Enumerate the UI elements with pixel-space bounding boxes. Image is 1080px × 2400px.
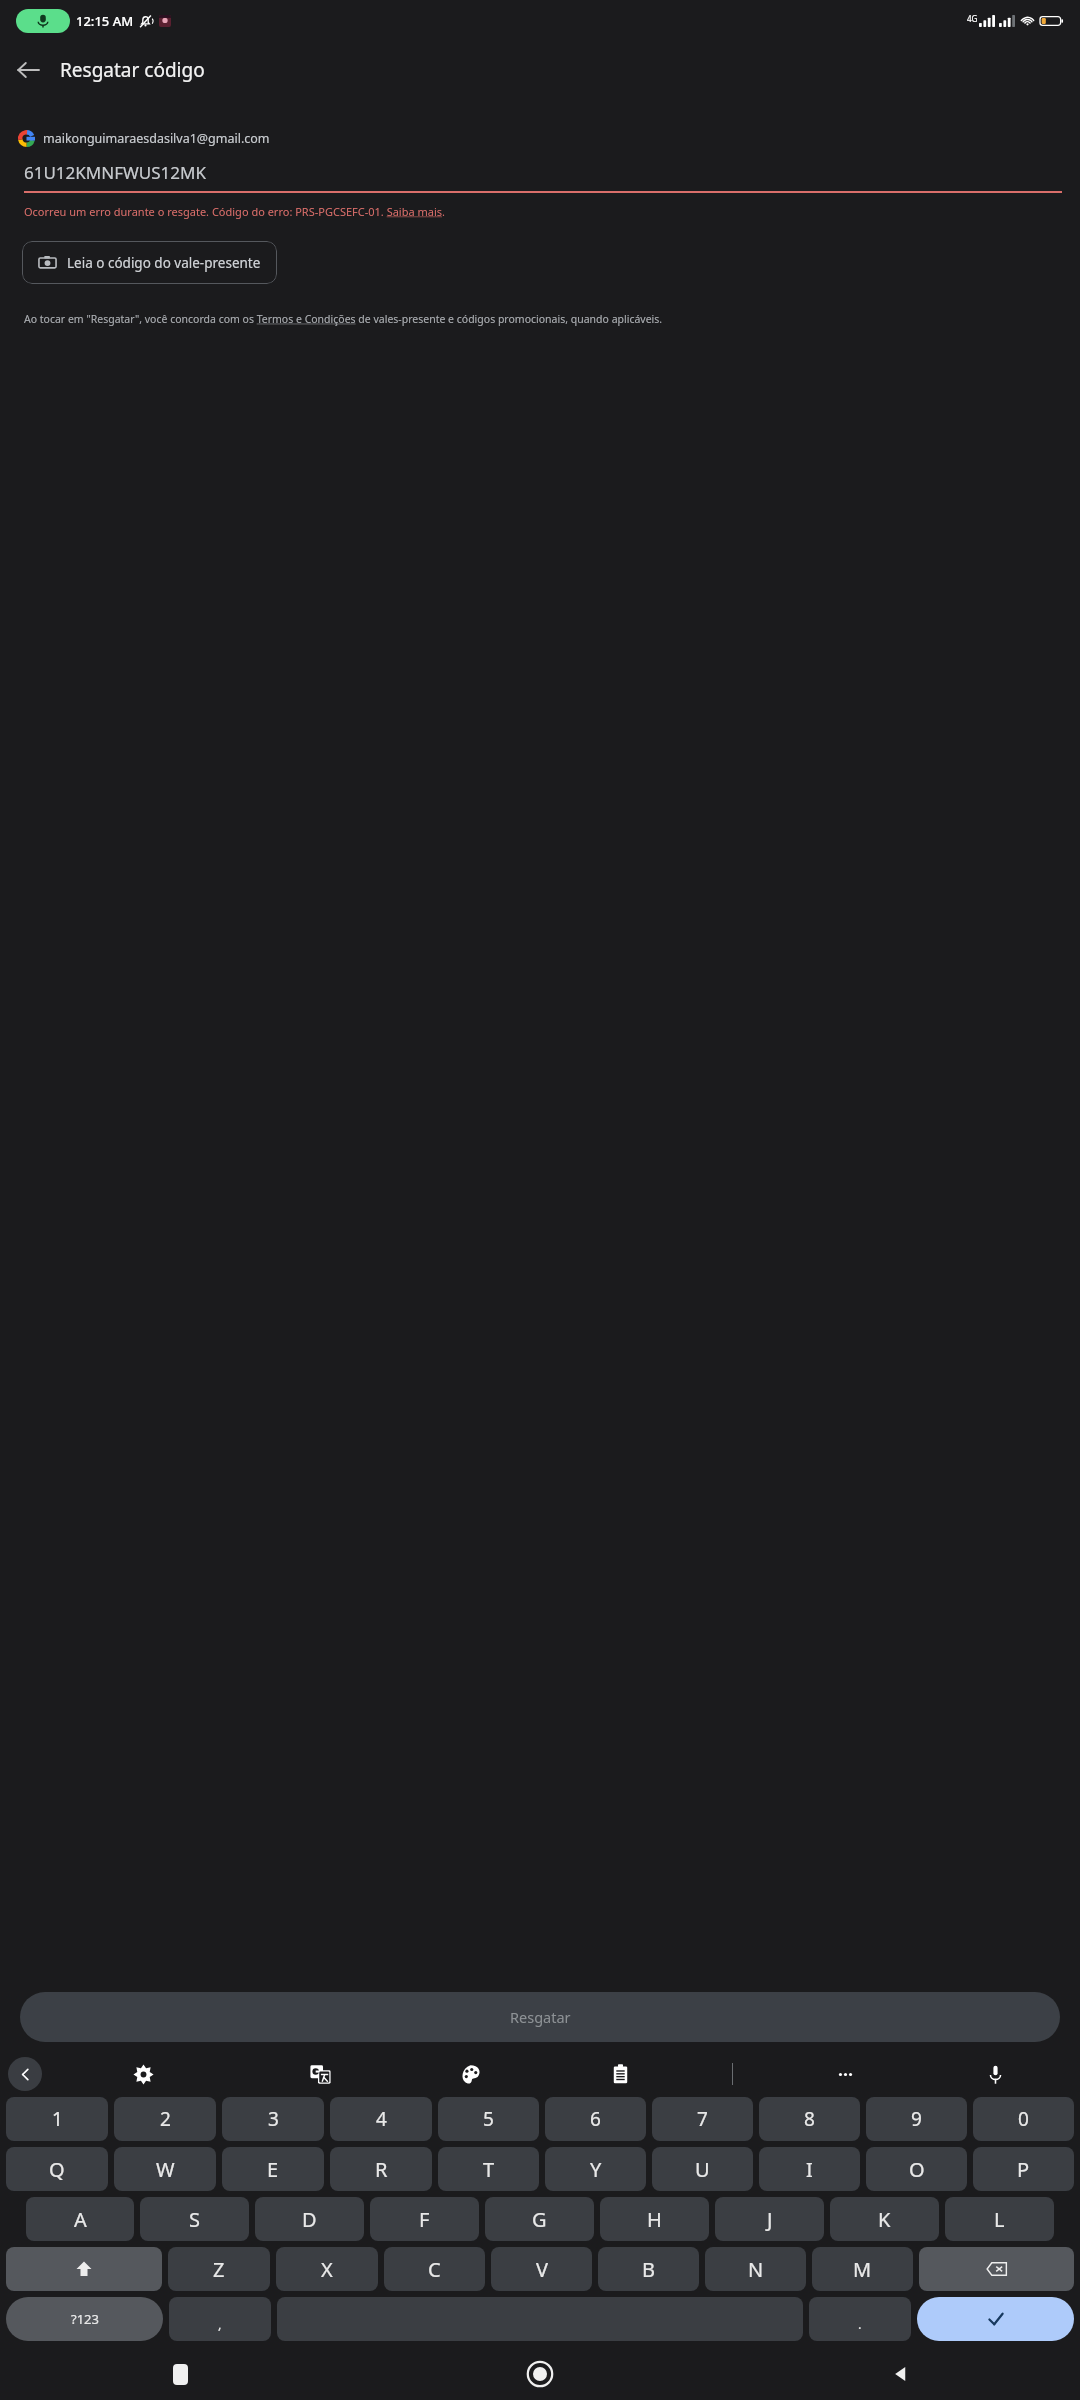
button[interactable]: O xyxy=(866,2147,967,2191)
button[interactable]: 9 xyxy=(866,2097,967,2141)
button[interactable]: 0 xyxy=(973,2097,1074,2141)
staticText: X xyxy=(321,2256,333,2283)
button[interactable]: ?123 xyxy=(6,2297,163,2341)
staticText: . xyxy=(858,2315,862,2333)
button[interactable]: N xyxy=(705,2247,806,2291)
button[interactable]: Apagar xyxy=(919,2247,1074,2291)
staticText: P xyxy=(1017,2156,1030,2183)
staticText: 5 xyxy=(483,2106,494,2132)
button[interactable]: 4 xyxy=(330,2097,432,2141)
staticText: N xyxy=(748,2256,764,2283)
button[interactable]: X xyxy=(276,2247,378,2291)
button[interactable]: W xyxy=(114,2147,216,2191)
button[interactable]: 8 xyxy=(759,2097,860,2141)
staticText: Resgatar código xyxy=(60,57,205,83)
button[interactable]: T xyxy=(438,2147,539,2191)
button[interactable]: 6 xyxy=(545,2097,646,2141)
button[interactable]: . xyxy=(809,2297,911,2341)
button[interactable]: I xyxy=(759,2147,860,2191)
button[interactable]: B xyxy=(598,2247,699,2291)
staticText: L xyxy=(994,2206,1005,2233)
button[interactable]: R xyxy=(330,2147,432,2191)
staticText: 4 xyxy=(376,2106,387,2132)
staticText: Resgatar xyxy=(510,2007,571,2027)
button[interactable]: 3 xyxy=(222,2097,324,2141)
staticText: 61U12KMNFWUS12MK xyxy=(24,161,206,184)
staticText: C xyxy=(428,2256,441,2283)
button[interactable]: K xyxy=(830,2197,939,2241)
button[interactable]: Q xyxy=(6,2147,108,2191)
staticText: S xyxy=(189,2206,200,2233)
staticText: F xyxy=(419,2206,430,2233)
staticText: 7 xyxy=(697,2106,708,2132)
button[interactable]: Leia o código do vale-presente xyxy=(22,241,277,284)
button[interactable]: Fechar barra xyxy=(8,2057,42,2091)
staticText: Ocorreu um erro durante o resgate. Códig… xyxy=(24,204,446,219)
staticText: 9 xyxy=(911,2106,922,2132)
staticText: , xyxy=(218,2315,222,2333)
button[interactable]: F xyxy=(370,2197,479,2241)
button[interactable]: 7 xyxy=(652,2097,753,2141)
button[interactable]: Entrada por voz xyxy=(920,2054,1070,2094)
staticText: B xyxy=(642,2256,655,2283)
staticText: Q xyxy=(49,2156,65,2183)
button[interactable]: S xyxy=(140,2197,249,2241)
staticText: 8 xyxy=(804,2106,815,2132)
button[interactable]: Confirmar xyxy=(917,2297,1074,2341)
button[interactable]: , xyxy=(169,2297,271,2341)
button[interactable]: Mais opções xyxy=(770,2054,920,2094)
button[interactable]: H xyxy=(600,2197,709,2241)
button[interactable]: V xyxy=(491,2247,592,2291)
staticText: Leia o código do vale-presente xyxy=(67,254,261,272)
button[interactable]: E xyxy=(222,2147,324,2191)
button[interactable]: Configurações xyxy=(42,2054,245,2094)
staticText: T xyxy=(483,2156,495,2183)
button[interactable]: Resgatar xyxy=(20,1992,1060,2042)
staticText: D xyxy=(302,2206,317,2233)
button[interactable]: J xyxy=(715,2197,824,2241)
button[interactable]: G xyxy=(485,2197,594,2241)
staticText: maikonguimaraesdasilva1@gmail.com xyxy=(43,130,270,147)
button[interactable]: C xyxy=(384,2247,485,2291)
staticText: O xyxy=(909,2156,925,2183)
button[interactable]: 2 xyxy=(114,2097,216,2141)
button[interactable]: 5 xyxy=(438,2097,539,2141)
button[interactable]: P xyxy=(973,2147,1074,2191)
button[interactable]: Área de transferência xyxy=(545,2054,695,2094)
staticText: Z xyxy=(213,2256,225,2283)
staticText: K xyxy=(878,2206,891,2233)
staticText: R xyxy=(375,2156,388,2183)
staticText: M xyxy=(853,2256,872,2283)
staticText: A xyxy=(74,2206,87,2233)
staticText: J xyxy=(767,2206,773,2233)
staticText: V xyxy=(536,2256,548,2283)
button[interactable]: 1 xyxy=(6,2097,108,2141)
button[interactable]: L xyxy=(945,2197,1054,2241)
button[interactable]: Voltar xyxy=(720,2348,1080,2400)
button[interactable]: U xyxy=(652,2147,753,2191)
button[interactable]: A xyxy=(26,2197,134,2241)
button[interactable]: Shift xyxy=(6,2247,162,2291)
staticText: 2 xyxy=(160,2106,171,2132)
staticText: U xyxy=(695,2156,710,2183)
button[interactable]: Z xyxy=(168,2247,270,2291)
staticText: 6 xyxy=(590,2106,601,2132)
staticText: 4G xyxy=(967,13,978,24)
button[interactable]: Traduzir xyxy=(245,2054,395,2094)
button[interactable]: M xyxy=(812,2247,913,2291)
button[interactable]: Voltar xyxy=(0,42,56,98)
staticText: E xyxy=(267,2156,279,2183)
staticText: 1 xyxy=(52,2106,63,2132)
button[interactable]: D xyxy=(255,2197,364,2241)
button[interactable]: Temas xyxy=(395,2054,545,2094)
staticText: W xyxy=(156,2156,175,2183)
button[interactable]: Recentes xyxy=(0,2348,360,2400)
staticText: I xyxy=(806,2156,813,2183)
button[interactable]: Início xyxy=(360,2348,720,2400)
staticText: 0 xyxy=(1018,2106,1029,2132)
staticText: G xyxy=(532,2206,547,2233)
staticText: 12:15 AM xyxy=(76,12,134,30)
button[interactable]: Y xyxy=(545,2147,646,2191)
staticText: H xyxy=(647,2206,662,2233)
